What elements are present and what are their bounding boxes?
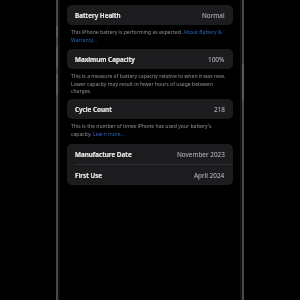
button[interactable]: Maximum Capacity (67, 49, 233, 69)
button[interactable]: This is a measure of battery capacity re… (67, 73, 233, 94)
staticText: April 2024 (194, 171, 225, 180)
button[interactable]: Battery Health (67, 5, 233, 25)
button[interactable]: Cycle Count (67, 99, 233, 119)
staticText: First Use (75, 171, 103, 180)
staticText: 218 (214, 105, 225, 114)
staticText: Normal (202, 11, 225, 20)
staticText: Maximum Capacity (75, 55, 135, 64)
staticText: Cycle Count (75, 105, 112, 114)
staticText: November 2023 (177, 150, 225, 159)
button[interactable]: Manufacture Date (67, 144, 233, 164)
button[interactable]: First Use (67, 165, 233, 185)
staticText: Manufacture Date (75, 150, 132, 159)
staticText: Battery Health (75, 11, 121, 20)
button[interactable]: This iPhone battery is performing as exp… (67, 29, 233, 43)
staticText: 100% (208, 55, 225, 64)
button[interactable]: This is the number of times iPhone has u… (67, 123, 233, 137)
